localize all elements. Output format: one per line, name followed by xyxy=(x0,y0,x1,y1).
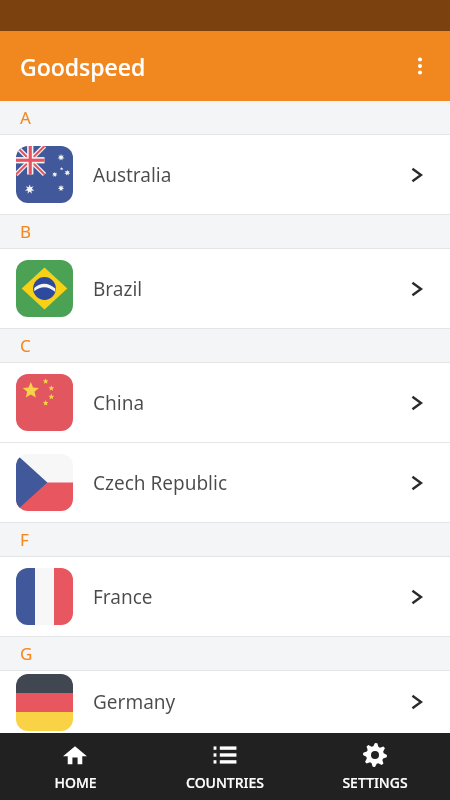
button[interactable]: HOME xyxy=(0,733,150,800)
button[interactable]: Brazil xyxy=(0,249,450,328)
staticText: SETTINGS xyxy=(342,773,408,792)
button[interactable]: COUNTRIES xyxy=(150,733,300,800)
staticText: C xyxy=(20,334,31,357)
staticText: Goodspeed xyxy=(20,51,146,82)
staticText: China xyxy=(93,390,402,416)
button[interactable]: Australia xyxy=(0,135,450,214)
staticText: Australia xyxy=(93,162,402,188)
button[interactable]: Germany xyxy=(0,671,450,733)
staticText: B xyxy=(20,220,32,243)
staticText: Germany xyxy=(93,689,402,715)
staticText: G xyxy=(20,642,33,665)
staticText: HOME xyxy=(54,773,97,792)
staticText: Brazil xyxy=(93,276,402,302)
staticText: Czech Republic xyxy=(93,470,402,496)
button[interactable]: More options xyxy=(398,44,442,88)
button[interactable]: Czech Republic xyxy=(0,443,450,522)
staticText: F xyxy=(20,528,29,551)
button[interactable]: France xyxy=(0,557,450,636)
button[interactable]: China xyxy=(0,363,450,442)
staticText: A xyxy=(20,106,31,129)
staticText: COUNTRIES xyxy=(186,773,264,792)
staticText: France xyxy=(93,584,402,610)
button[interactable]: SETTINGS xyxy=(300,733,450,800)
